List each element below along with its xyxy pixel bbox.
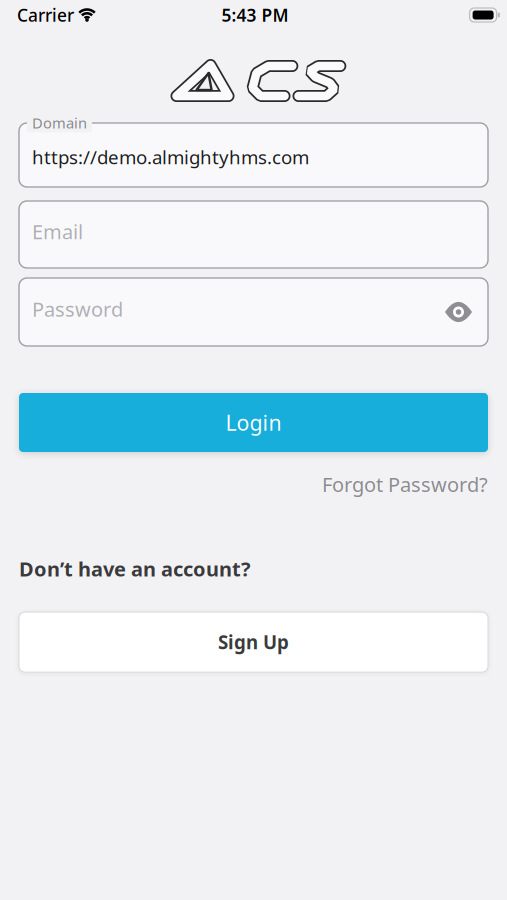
staticText: Email xyxy=(32,218,83,245)
staticText: 5:43 PM xyxy=(221,3,288,26)
staticText: https://demo.almightyhms.com xyxy=(32,145,309,169)
staticText: Don’t have an account? xyxy=(19,556,251,582)
textField[interactable]: https://demo.almightyhms.com xyxy=(19,123,488,187)
textField[interactable]: Email xyxy=(19,201,488,268)
staticText: Sign Up xyxy=(218,630,289,654)
button[interactable]: Forgot Password? xyxy=(322,471,488,498)
staticText: Domain xyxy=(32,113,87,132)
staticText: Carrier xyxy=(17,3,74,26)
button[interactable]: Show password xyxy=(445,303,472,321)
textField[interactable]: Password xyxy=(19,278,488,346)
staticText: Password xyxy=(32,296,123,322)
staticText: Forgot Password? xyxy=(322,471,488,498)
button[interactable]: Sign Up xyxy=(19,612,488,672)
button[interactable]: Login xyxy=(19,393,488,452)
staticText: Login xyxy=(225,408,281,437)
